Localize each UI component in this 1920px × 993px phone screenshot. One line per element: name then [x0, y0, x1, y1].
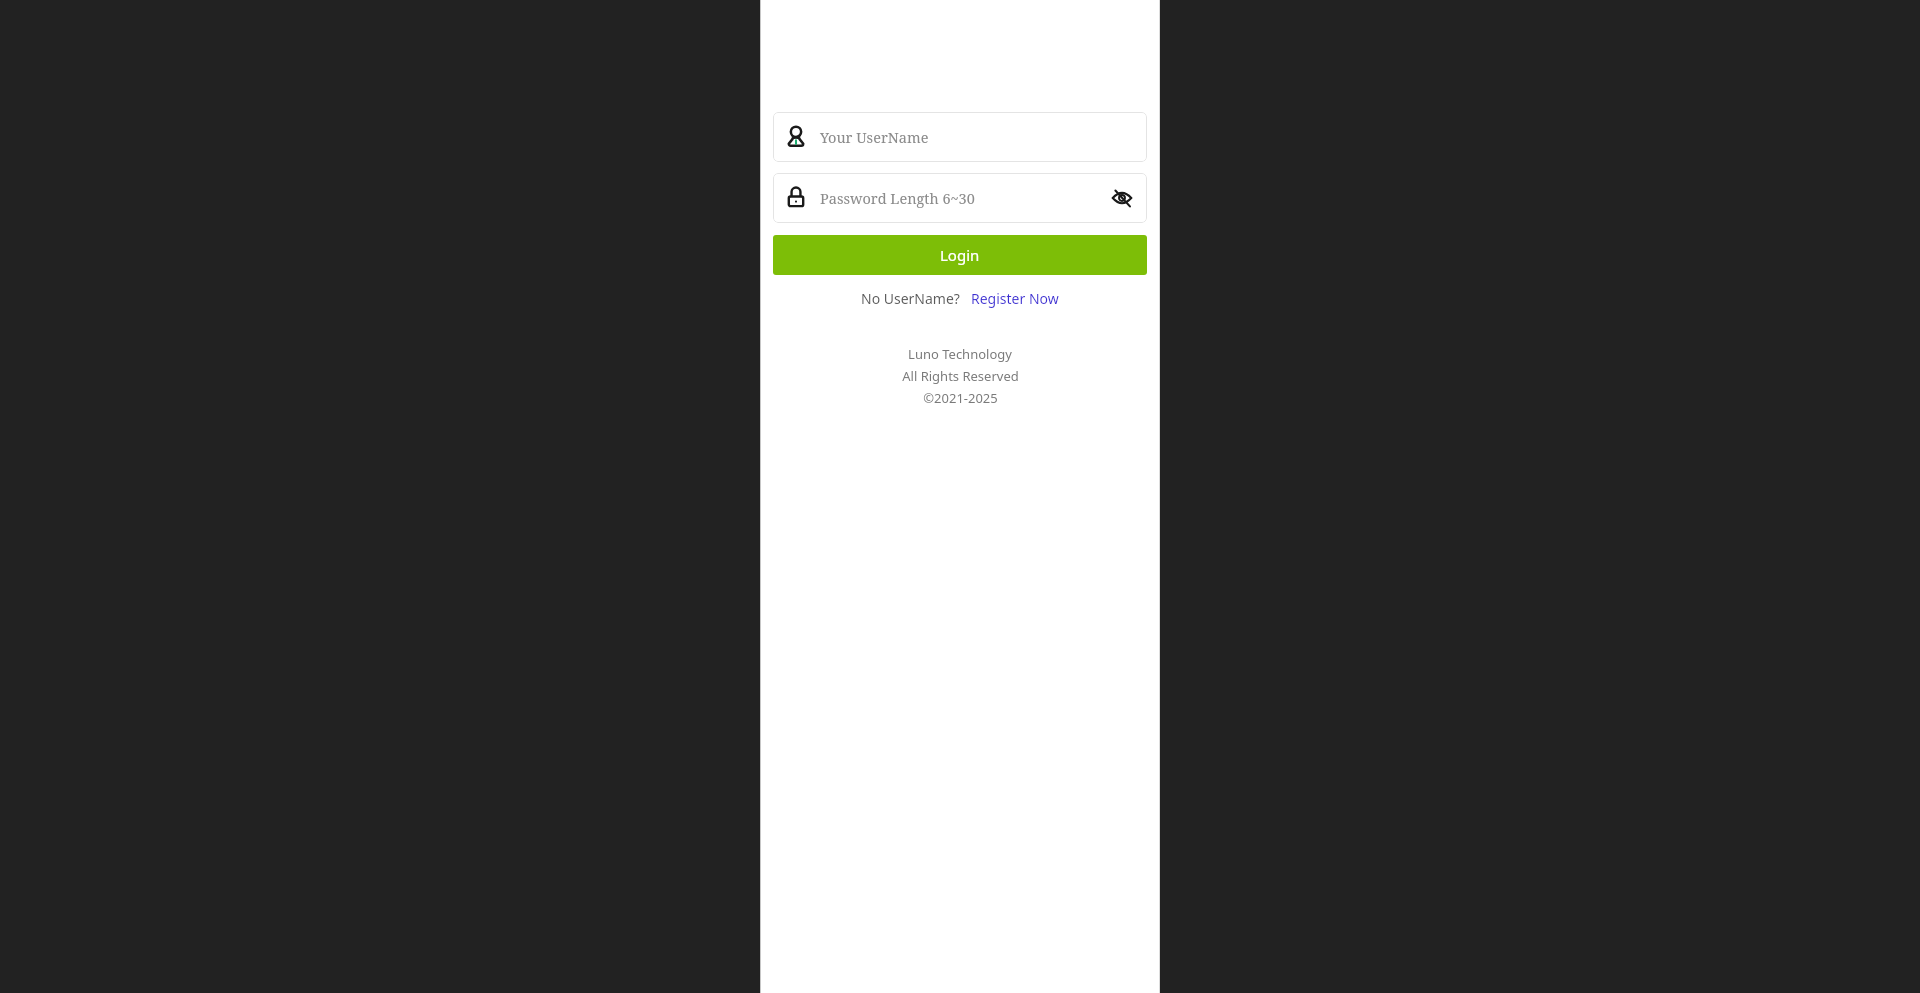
button[interactable]: Show password: [1107, 183, 1137, 213]
button[interactable]: Login: [773, 235, 1147, 275]
staticText: ©2021-2025: [923, 389, 998, 407]
staticText: Login: [940, 245, 980, 265]
staticText: All Rights Reserved: [902, 367, 1019, 385]
button[interactable]: Password Length 6~30: [773, 173, 1147, 223]
staticText: Register Now: [971, 289, 1059, 308]
button[interactable]: Your UserName: [773, 112, 1147, 162]
staticText: Luno Technology: [908, 345, 1012, 363]
staticText: Your UserName: [820, 127, 929, 147]
staticText: No UserName?: [861, 289, 960, 308]
button[interactable]: Register Now: [971, 289, 1059, 308]
staticText: Password Length 6~30: [820, 188, 1107, 208]
